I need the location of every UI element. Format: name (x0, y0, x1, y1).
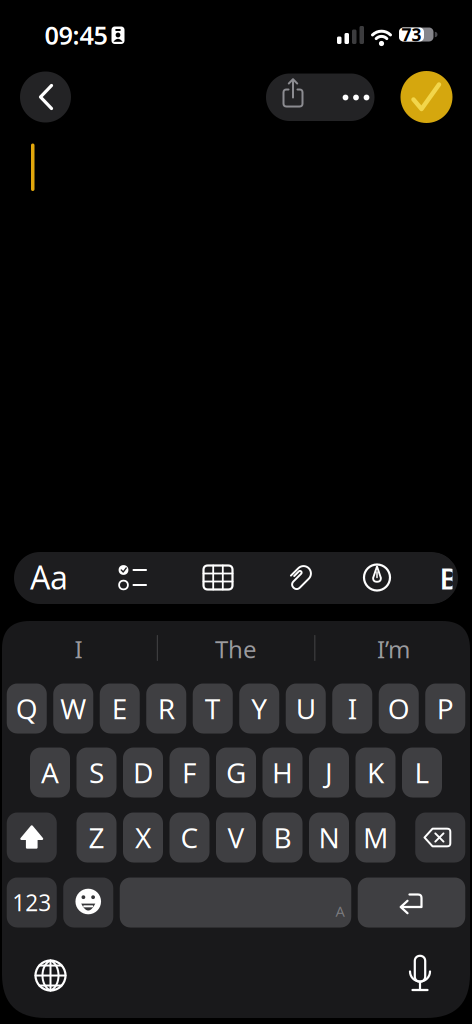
staticText: I (348, 690, 357, 727)
staticText: B (439, 558, 458, 597)
staticText: A (335, 901, 344, 921)
staticText: T (205, 690, 221, 727)
staticText: 09:45 (44, 18, 107, 52)
staticText: Q (16, 690, 38, 727)
staticText: M (363, 819, 388, 856)
staticText: A (41, 754, 59, 791)
staticText: I’m (377, 633, 410, 665)
staticText: I (75, 633, 83, 665)
staticText: P (437, 690, 454, 727)
staticText: E (112, 690, 128, 727)
staticText: C (180, 819, 198, 856)
staticText: L (414, 754, 429, 791)
staticText: G (226, 754, 246, 791)
staticText: S (89, 754, 104, 791)
staticText: The (215, 633, 257, 665)
staticText: Aa (30, 556, 68, 598)
staticText: U (296, 690, 316, 727)
staticText: X (135, 819, 151, 856)
staticText: B (273, 819, 291, 856)
staticText: 73 (401, 23, 421, 46)
staticText: J (325, 754, 333, 791)
staticText: W (60, 690, 86, 727)
staticText: D (133, 754, 153, 791)
staticText: O (388, 690, 410, 727)
staticText: R (158, 690, 175, 727)
staticText: H (272, 754, 293, 791)
staticText: K (367, 754, 384, 791)
staticText: V (227, 819, 244, 856)
staticText: 123 (12, 887, 51, 917)
staticText: Z (88, 819, 104, 856)
staticText: N (318, 819, 339, 856)
staticText: Y (251, 690, 267, 727)
staticText: F (182, 754, 197, 791)
